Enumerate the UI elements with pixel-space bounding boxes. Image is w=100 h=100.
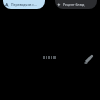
staticText: Рецепт блюд: [63, 2, 85, 7]
button[interactable]: Edit: [81, 52, 95, 66]
staticText: Переводчик с…: [11, 2, 37, 7]
button[interactable]: Рецепт блюд: [55, 0, 97, 9]
button[interactable]: [43, 56, 56, 59]
button[interactable]: Переводчик с…: [3, 0, 45, 9]
